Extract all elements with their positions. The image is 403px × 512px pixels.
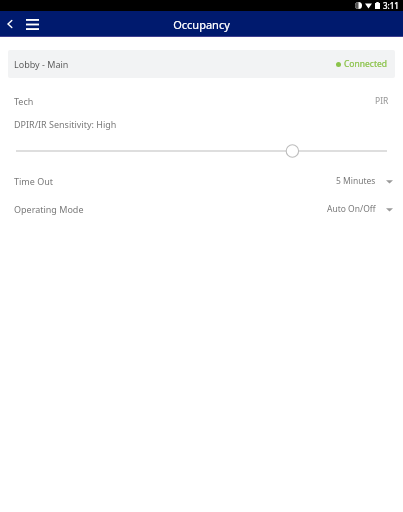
staticText: Auto On/Off — [327, 203, 376, 215]
staticText: Tech — [14, 95, 34, 107]
staticText: DPIR/IR Sensitivity: High — [14, 118, 117, 130]
staticText: Operating Mode — [14, 203, 84, 215]
staticText: Time Out — [14, 175, 53, 187]
staticText: 5 Minutes — [336, 175, 376, 187]
button[interactable]: Lobby - Main — [8, 50, 395, 78]
staticText: Occupancy — [173, 17, 230, 32]
button[interactable]: Sensitivity slider — [16, 142, 387, 160]
staticText: Connected — [344, 58, 387, 70]
staticText: PIR — [375, 95, 389, 107]
button[interactable]: Operating Mode — [0, 201, 403, 217]
button[interactable]: Menu — [21, 13, 43, 35]
staticText: 3:11 — [383, 0, 399, 11]
button[interactable]: Time Out — [0, 173, 403, 189]
staticText: Lobby - Main — [14, 58, 69, 70]
button[interactable]: Back — [0, 14, 20, 34]
